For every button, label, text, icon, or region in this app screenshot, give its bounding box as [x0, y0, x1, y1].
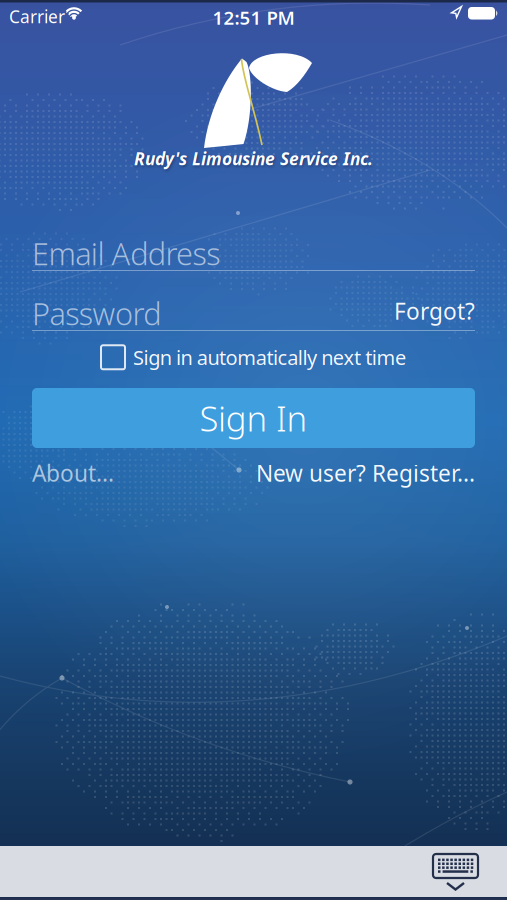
- button[interactable]: Dismiss Keyboard: [433, 854, 478, 892]
- button[interactable]: Password: [32, 293, 475, 331]
- staticText: About...: [32, 458, 114, 488]
- staticText: Email Address: [32, 233, 220, 274]
- staticText: Sign In: [199, 395, 308, 441]
- staticText: Forgot?: [394, 296, 475, 326]
- button[interactable]: Forgot?: [394, 296, 475, 326]
- staticText: Carrier: [9, 5, 65, 28]
- staticText: Sign in automatically next time: [133, 344, 406, 371]
- button[interactable]: Sign in automatically next time: [101, 344, 406, 371]
- staticText: Rudy's Limousine Service Inc.: [134, 147, 373, 170]
- staticText: 12:51 PM: [212, 5, 294, 30]
- button[interactable]: About...: [32, 458, 114, 488]
- button[interactable]: Sign In: [32, 388, 475, 448]
- button[interactable]: New user? Register...: [256, 458, 475, 488]
- button[interactable]: Email Address: [32, 233, 475, 271]
- staticText: Password: [32, 293, 161, 334]
- staticText: New user? Register...: [256, 458, 475, 488]
